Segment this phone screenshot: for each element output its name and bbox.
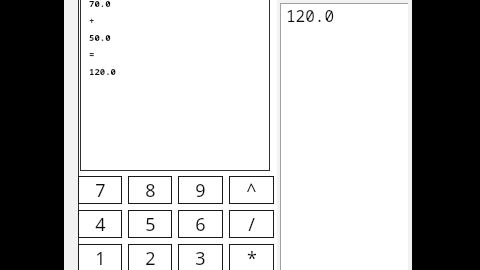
button[interactable]: 6 bbox=[178, 210, 223, 238]
staticText: 4 bbox=[95, 212, 106, 237]
button[interactable]: Multiply bbox=[229, 244, 274, 270]
button[interactable]: Power bbox=[229, 176, 274, 204]
staticText: = bbox=[89, 48, 95, 60]
staticText: 5 bbox=[145, 212, 156, 237]
button[interactable]: 9 bbox=[178, 176, 223, 204]
staticText: 6 bbox=[195, 212, 206, 237]
staticText: 2 bbox=[145, 246, 156, 270]
staticText: ^ bbox=[246, 178, 257, 203]
button[interactable]: 8 bbox=[128, 176, 172, 204]
button[interactable]: 5 bbox=[128, 210, 172, 238]
button[interactable]: Divide bbox=[229, 210, 274, 238]
staticText: 9 bbox=[195, 178, 206, 203]
staticText: 3 bbox=[195, 246, 206, 270]
staticText: 7 bbox=[95, 178, 106, 203]
staticText: 120.0 bbox=[286, 5, 335, 27]
button[interactable]: 3 bbox=[178, 244, 223, 270]
staticText: 1 bbox=[95, 246, 106, 270]
staticText: + bbox=[89, 14, 95, 26]
button[interactable]: 7 bbox=[78, 176, 122, 204]
staticText: * bbox=[247, 246, 257, 270]
button[interactable]: 1 bbox=[78, 244, 122, 270]
staticText: / bbox=[248, 212, 255, 237]
staticText: 70.0 bbox=[89, 0, 111, 9]
staticText: 8 bbox=[145, 178, 156, 203]
button[interactable]: 2 bbox=[128, 244, 172, 270]
staticText: 50.0 bbox=[89, 31, 111, 43]
staticText: 120.0 bbox=[89, 65, 117, 77]
button[interactable]: 4 bbox=[78, 210, 122, 238]
